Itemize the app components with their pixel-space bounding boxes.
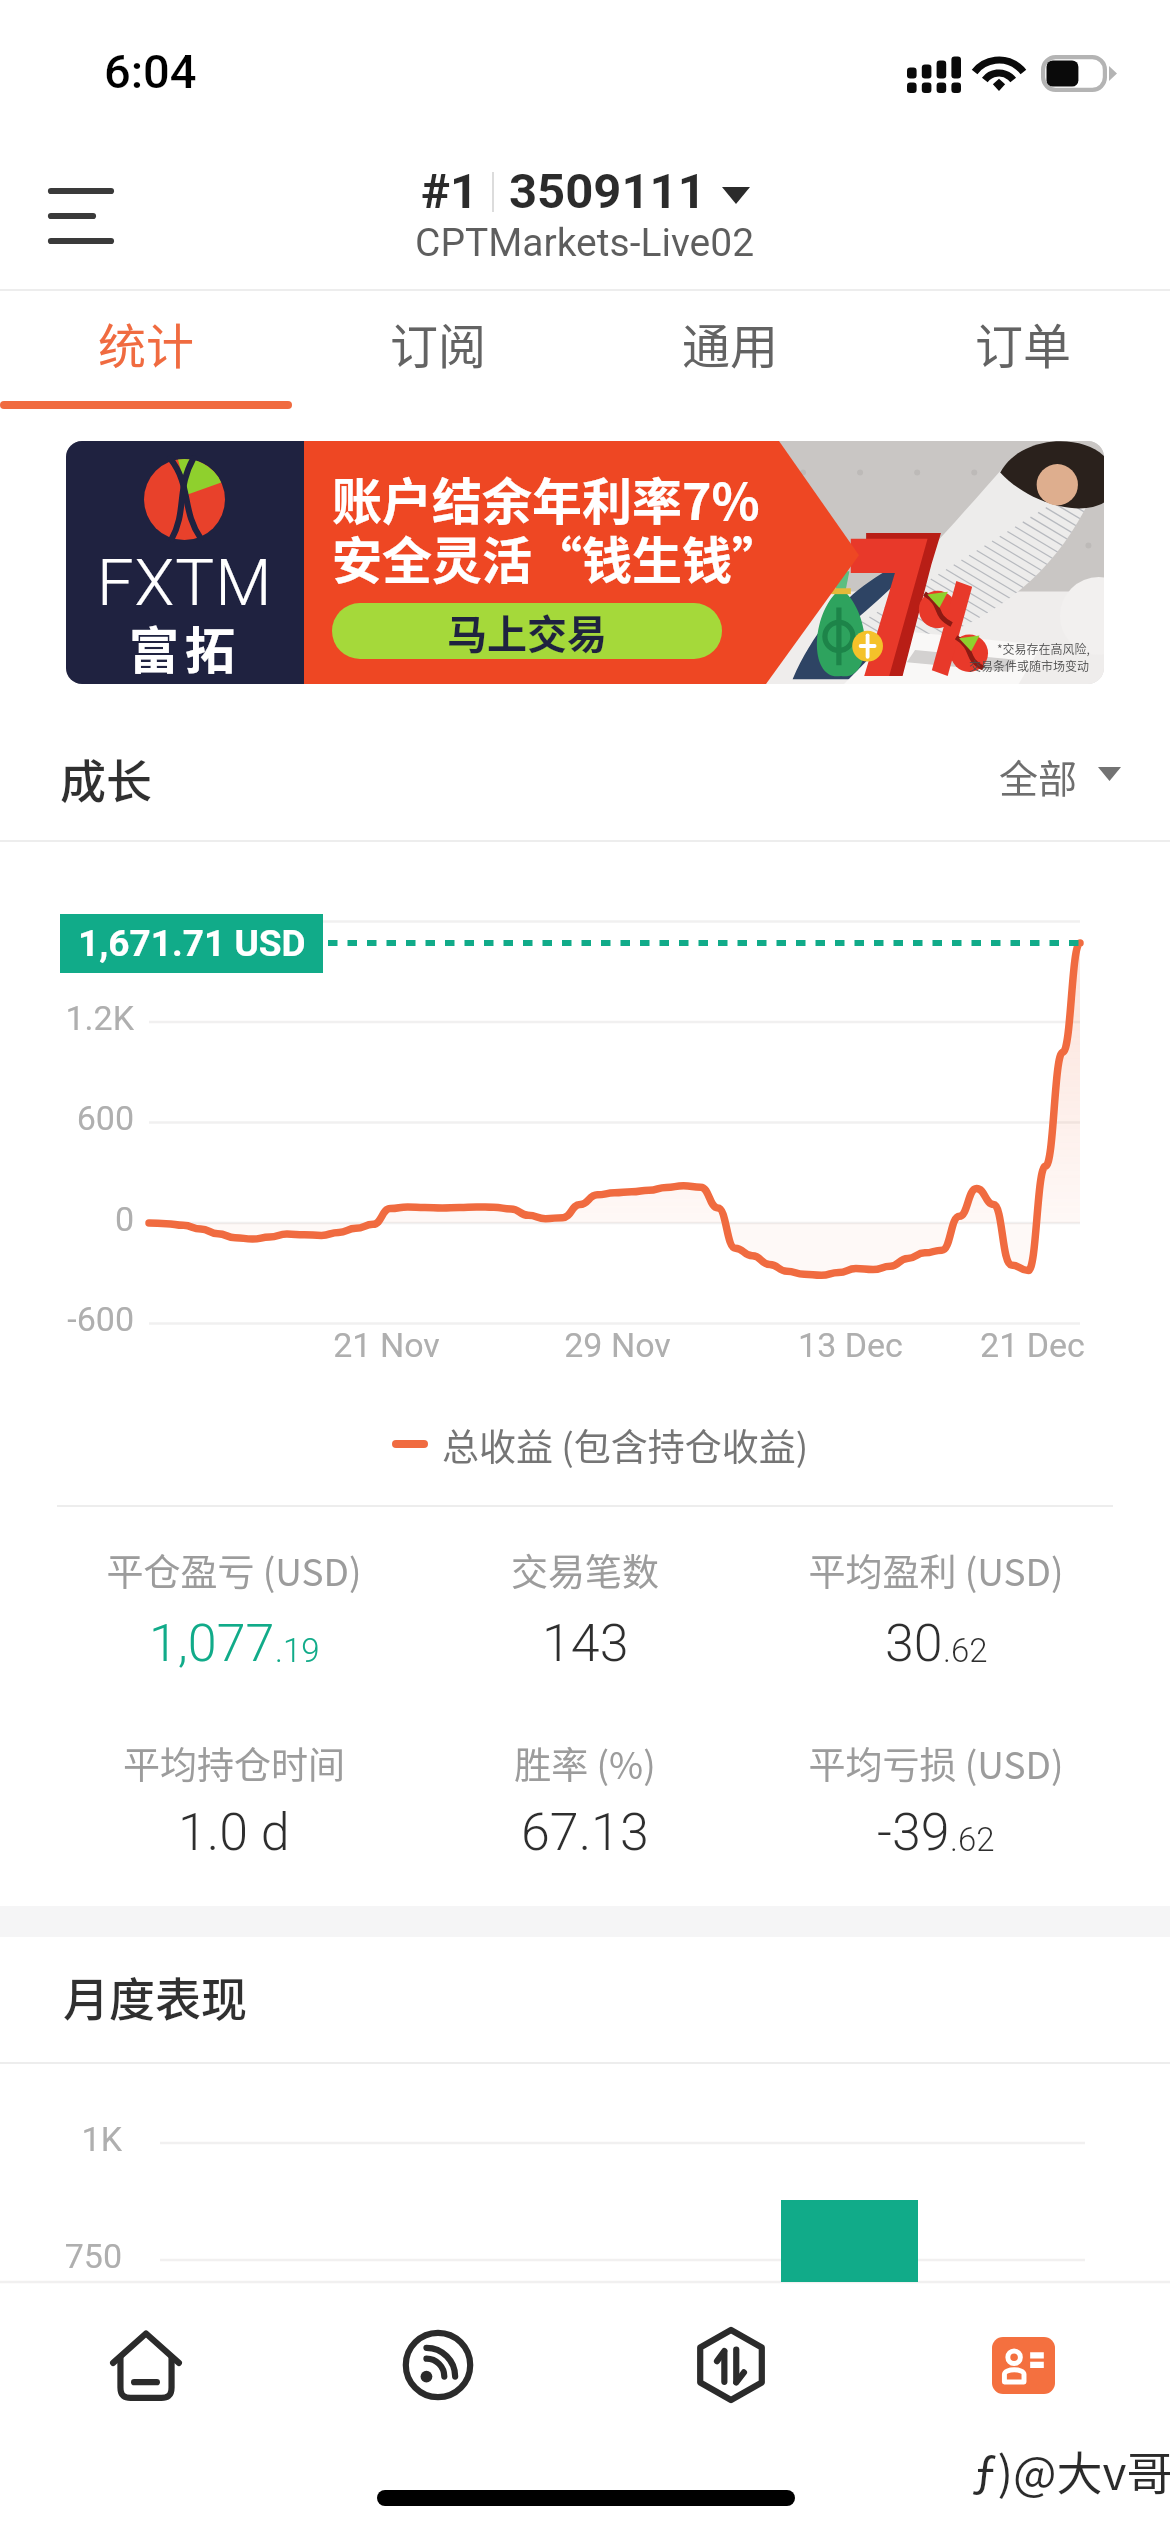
staticText: 马上交易 <box>447 603 607 659</box>
staticText: 月度表现 <box>63 1963 247 2030</box>
staticText: 21 Nov <box>333 1325 440 1365</box>
staticText: 3509111 <box>509 163 706 220</box>
staticText: 平均盈利 (USD) <box>808 1543 1064 1597</box>
staticText: 统计 <box>98 308 195 378</box>
staticText: 143 <box>542 1613 629 1674</box>
button[interactable]: Signals <box>292 2300 584 2430</box>
staticText: 1.2K <box>65 998 134 1038</box>
staticText: 30 <box>885 1613 943 1674</box>
staticText: 平仓盈亏 (USD) <box>106 1543 362 1597</box>
staticText: ƒ)@大v哥 <box>972 2437 1170 2504</box>
staticText: 1.0 d <box>178 1802 290 1863</box>
staticText: 全部 <box>999 748 1078 800</box>
staticText: FXTM <box>97 545 273 621</box>
button[interactable]: 订单 <box>877 284 1170 402</box>
staticText: 6:04 <box>104 44 197 99</box>
staticText: .62 <box>943 1631 988 1670</box>
staticText: *交易存在高风险, <box>997 640 1090 657</box>
staticText: 750 <box>64 2236 122 2276</box>
staticText: 1,077 <box>149 1613 275 1674</box>
staticText: 账户结余年利率7% <box>332 462 760 534</box>
staticText: 富拓 <box>129 611 241 683</box>
staticText: 成长 <box>60 745 152 812</box>
button[interactable]: FXTM <box>66 441 1104 684</box>
staticText: 胜率 (%) <box>514 1736 656 1790</box>
staticText: 交易笔数 <box>511 1543 659 1597</box>
staticText: 0 <box>114 1199 134 1239</box>
staticText: 安全灵活“钱生钱” <box>332 521 782 593</box>
staticText: .19 <box>275 1631 320 1670</box>
staticText: 67.13 <box>521 1802 649 1863</box>
staticText: 平均亏损 (USD) <box>808 1736 1064 1790</box>
staticText: CPTMarkets-Live02 <box>415 220 755 266</box>
staticText: 订单 <box>975 308 1072 378</box>
staticText: 1K <box>81 2119 122 2159</box>
staticText: -39 <box>877 1802 950 1863</box>
staticText: 总收益 (包含持仓收益) <box>442 1418 809 1470</box>
staticText: 平均持仓时间 <box>123 1736 345 1790</box>
staticText: 21 Dec <box>980 1325 1085 1365</box>
staticText: 1,671.71 USD <box>78 922 306 965</box>
button[interactable]: 统计 <box>0 284 292 402</box>
button[interactable]: 订阅 <box>292 284 584 402</box>
button[interactable]: 全部 <box>999 748 1121 800</box>
button[interactable]: Menu <box>34 172 128 260</box>
staticText: 29 Nov <box>564 1325 671 1365</box>
staticText: .62 <box>950 1820 995 1859</box>
staticText: 交易条件或随市场变动 <box>969 657 1090 674</box>
button[interactable]: 马上交易 <box>332 603 722 659</box>
button[interactable]: Account <box>992 2337 1055 2394</box>
button[interactable]: Home <box>0 2300 292 2430</box>
staticText: 600 <box>76 1098 134 1138</box>
staticText: #1 <box>421 163 479 220</box>
button[interactable]: #1 <box>300 163 870 266</box>
staticText: -600 <box>67 1299 134 1339</box>
staticText: 13 Dec <box>798 1325 903 1365</box>
staticText: 通用 <box>682 308 779 378</box>
button[interactable]: Trade <box>584 2300 877 2430</box>
button[interactable]: 通用 <box>584 284 877 402</box>
staticText: 订阅 <box>390 308 487 378</box>
